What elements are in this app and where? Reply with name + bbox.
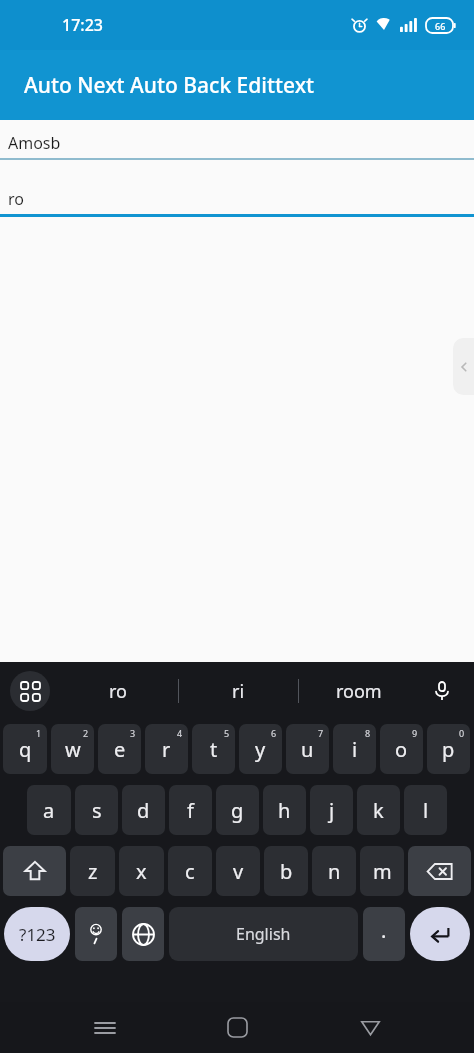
staticText: 6 (271, 727, 277, 739)
button[interactable]: r (145, 724, 188, 774)
staticText: l (423, 797, 429, 824)
button[interactable]: x (119, 846, 164, 896)
staticText: i (352, 736, 358, 763)
staticText: u (301, 736, 314, 763)
staticText: 9 (412, 727, 418, 739)
button[interactable]: e (98, 724, 141, 774)
staticText: x (136, 858, 147, 885)
staticText: Amosb (8, 132, 61, 154)
button[interactable]: g (216, 785, 259, 835)
staticText: e (114, 736, 126, 763)
staticText: h (278, 797, 291, 824)
button[interactable]: room (299, 662, 418, 720)
button[interactable]: Back (342, 1002, 398, 1053)
staticText: o (395, 736, 408, 763)
staticText: g (231, 797, 244, 824)
staticText: . (381, 917, 387, 944)
button[interactable]: m (360, 846, 404, 896)
staticText: q (19, 736, 32, 763)
button[interactable]: l (404, 785, 447, 835)
staticText: s (92, 797, 102, 824)
button[interactable]: w (51, 724, 94, 774)
staticText: y (255, 736, 266, 763)
staticText: 2 (83, 727, 89, 739)
button[interactable]: f (169, 785, 212, 835)
button[interactable]: y (239, 724, 282, 774)
staticText: b (280, 858, 293, 885)
button[interactable]: v (216, 846, 260, 896)
staticText: English (236, 923, 291, 945)
button[interactable]: Backspace (408, 846, 471, 896)
button[interactable]: s (75, 785, 118, 835)
staticText: 7 (318, 727, 324, 739)
staticText: ?123 (19, 923, 56, 946)
button[interactable]: n (312, 846, 356, 896)
staticText: f (187, 797, 194, 824)
staticText: a (43, 797, 55, 824)
button[interactable]: u (286, 724, 329, 774)
staticText: 3 (130, 727, 136, 739)
button[interactable]: Open side panel (453, 338, 474, 395)
button[interactable]: o (380, 724, 423, 774)
staticText: ro (109, 679, 127, 704)
staticText: d (137, 797, 150, 824)
staticText: c (185, 858, 195, 885)
button[interactable]: i (333, 724, 376, 774)
button[interactable]: t (192, 724, 235, 774)
button[interactable]: Change language (122, 907, 164, 961)
staticText: v (233, 858, 244, 885)
staticText: 1 (36, 727, 42, 739)
staticText: 66 (435, 20, 446, 32)
staticText: t (210, 736, 218, 763)
button[interactable]: b (264, 846, 308, 896)
staticText: 4 (177, 727, 183, 739)
button[interactable]: c (168, 846, 212, 896)
button[interactable]: z (70, 846, 115, 896)
button[interactable]: English (169, 907, 358, 961)
button[interactable]: Home (209, 1002, 265, 1053)
staticText: n (328, 858, 341, 885)
staticText: ri (232, 679, 245, 704)
button[interactable]: Shift (3, 846, 66, 896)
staticText: j (329, 797, 335, 824)
staticText: Auto Next Auto Back Edittext (24, 71, 315, 100)
staticText: z (88, 858, 98, 885)
staticText: ro (8, 188, 24, 210)
button[interactable]: d (122, 785, 165, 835)
button[interactable]: ro (58, 662, 178, 720)
button[interactable]: Recent apps (77, 1002, 133, 1053)
staticText: 5 (224, 727, 230, 739)
button[interactable]: k (357, 785, 400, 835)
button[interactable]: Emoji and comma (75, 907, 117, 961)
button[interactable]: j (310, 785, 353, 835)
staticText: r (162, 736, 171, 763)
staticText: 17:23 (62, 14, 103, 36)
button[interactable]: p (427, 724, 470, 774)
staticText: k (373, 797, 384, 824)
button[interactable]: ri (179, 662, 298, 720)
staticText: room (336, 679, 382, 704)
staticText: w (65, 736, 81, 763)
staticText: 0 (459, 727, 465, 739)
button[interactable]: q (3, 724, 47, 774)
staticText: m (373, 858, 392, 885)
button[interactable]: Voice input (423, 672, 461, 710)
button[interactable]: Enter (410, 907, 470, 961)
button[interactable]: h (263, 785, 306, 835)
button[interactable]: . (363, 907, 405, 961)
staticText: 8 (365, 727, 371, 739)
button[interactable]: ?123 (4, 907, 70, 961)
staticText: p (442, 736, 455, 763)
button[interactable]: Keyboard options (10, 671, 50, 711)
button[interactable]: a (27, 785, 71, 835)
